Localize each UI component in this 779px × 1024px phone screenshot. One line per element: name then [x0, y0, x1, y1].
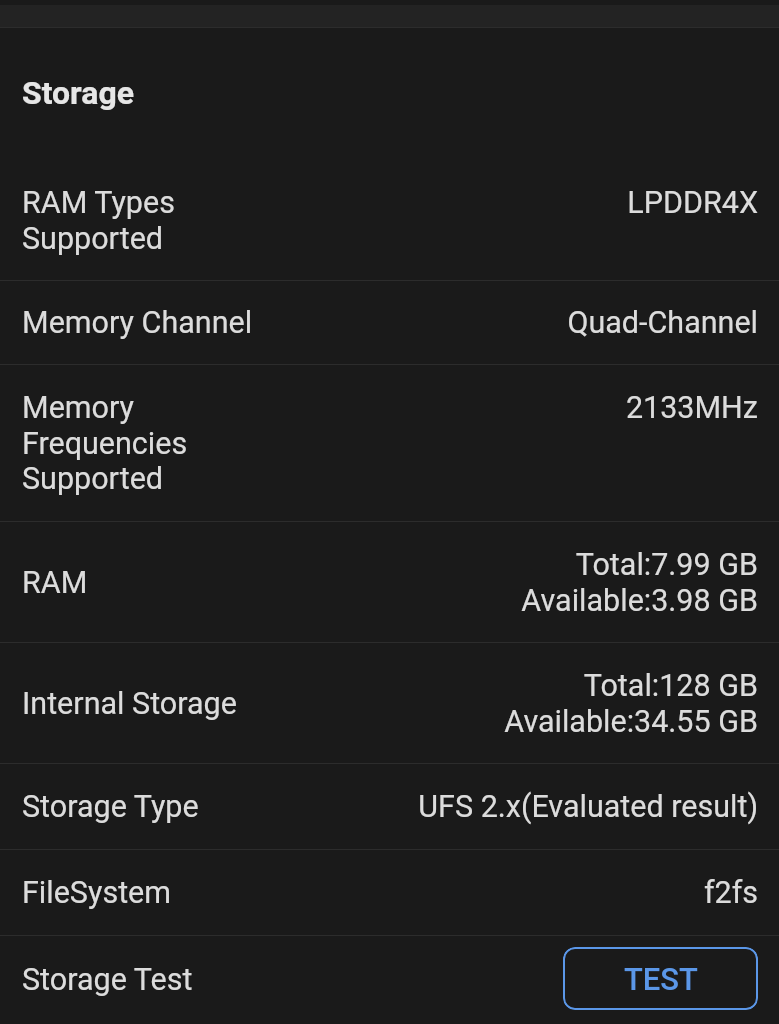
button[interactable]: RAM Types Supported	[0, 161, 779, 280]
button[interactable]: RAM	[0, 522, 779, 642]
staticText: Quad-Channel	[567, 305, 758, 341]
staticText: UFS 2.x(Evaluated result)	[418, 789, 758, 825]
staticText: Memory Channel	[22, 305, 559, 341]
staticText: Storage Type	[22, 789, 410, 825]
staticText: Memory Frequencies Supported	[22, 390, 617, 496]
staticText: Storage	[22, 74, 135, 112]
staticText: Total:7.99 GB Available:3.98 GB	[521, 547, 758, 618]
staticText: 2133MHz	[625, 390, 758, 426]
staticText: Internal Storage	[22, 686, 496, 722]
staticText: Storage Test	[22, 962, 563, 998]
staticText: TEST	[624, 961, 698, 997]
button[interactable]: TEST	[563, 947, 758, 1010]
staticText: RAM	[22, 565, 513, 601]
staticText: RAM Types Supported	[22, 185, 619, 256]
button[interactable]: FileSystem	[0, 850, 779, 935]
button[interactable]: Memory Channel	[0, 281, 779, 364]
button[interactable]: Memory Frequencies Supported	[0, 365, 779, 521]
button[interactable]: Storage Type	[0, 764, 779, 849]
staticText: LPDDR4X	[627, 185, 758, 221]
staticText: FileSystem	[22, 875, 695, 911]
staticText: Total:128 GB Available:34.55 GB	[504, 668, 758, 739]
staticText: f2fs	[703, 875, 758, 911]
button[interactable]: Storage Test	[0, 936, 779, 1024]
button[interactable]: Internal Storage	[0, 643, 779, 763]
